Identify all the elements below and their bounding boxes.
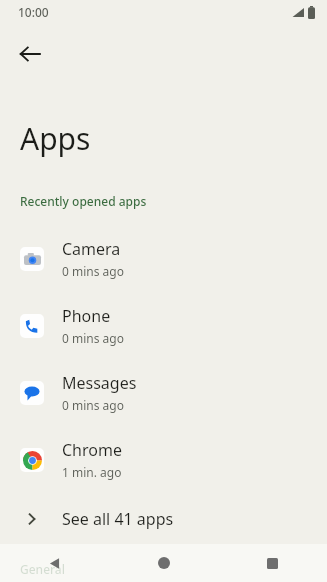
staticText: Chrome bbox=[62, 439, 122, 461]
staticText: Phone bbox=[62, 305, 111, 327]
staticText: See all 41 apps bbox=[62, 508, 174, 530]
button[interactable]: Back bbox=[0, 544, 109, 582]
staticText: 0 mins ago bbox=[62, 330, 124, 346]
button[interactable]: Back bbox=[8, 32, 52, 76]
button[interactable]: See all 41 apps bbox=[0, 493, 327, 545]
staticText: 0 mins ago bbox=[62, 397, 124, 413]
staticText: Recently opened apps bbox=[20, 193, 147, 209]
button[interactable]: Messages bbox=[0, 359, 327, 426]
staticText: General bbox=[20, 561, 65, 577]
button[interactable]: Recent apps bbox=[218, 544, 327, 582]
button[interactable]: Phone bbox=[0, 292, 327, 359]
staticText: 1 min. ago bbox=[62, 464, 122, 480]
button[interactable]: Chrome bbox=[0, 426, 327, 493]
button[interactable]: Camera bbox=[0, 225, 327, 292]
button[interactable]: Home bbox=[109, 544, 218, 582]
staticText: Camera bbox=[62, 238, 121, 260]
staticText: Messages bbox=[62, 372, 137, 394]
staticText: Apps bbox=[20, 118, 91, 159]
staticText: 10:00 bbox=[18, 4, 49, 20]
staticText: 0 mins ago bbox=[62, 263, 124, 279]
